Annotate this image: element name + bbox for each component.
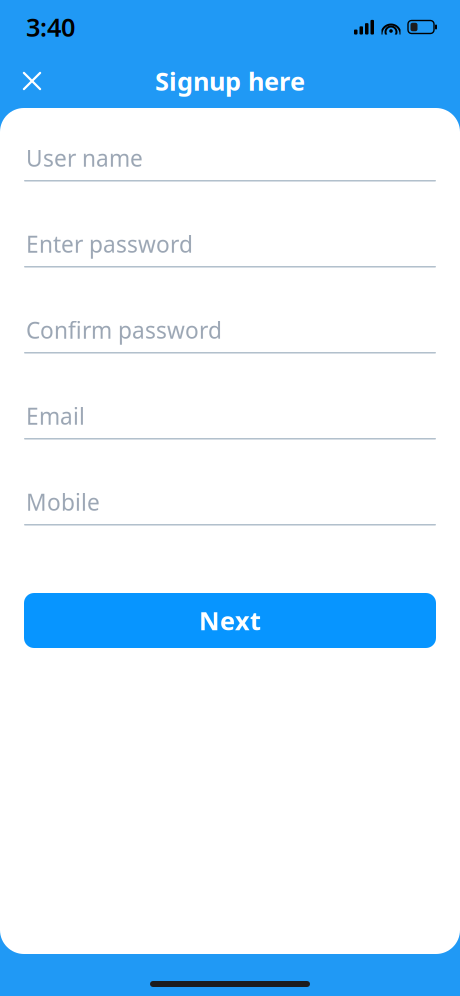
button[interactable]: Email — [24, 394, 436, 480]
staticText: Signup here — [155, 64, 305, 98]
button[interactable]: User name — [24, 136, 436, 222]
staticText: Confirm password — [26, 315, 222, 345]
button[interactable]: Mobile — [24, 480, 436, 566]
staticText: Email — [26, 401, 85, 431]
button[interactable]: Next — [24, 593, 436, 648]
staticText: 3:40 — [26, 10, 75, 44]
staticText: Next — [199, 604, 261, 637]
button[interactable]: Confirm password — [24, 308, 436, 394]
button[interactable]: Enter password — [24, 222, 436, 308]
staticText: Mobile — [26, 487, 100, 517]
staticText: User name — [26, 143, 143, 173]
staticText: Enter password — [26, 229, 193, 259]
button[interactable]: Close — [9, 58, 55, 104]
